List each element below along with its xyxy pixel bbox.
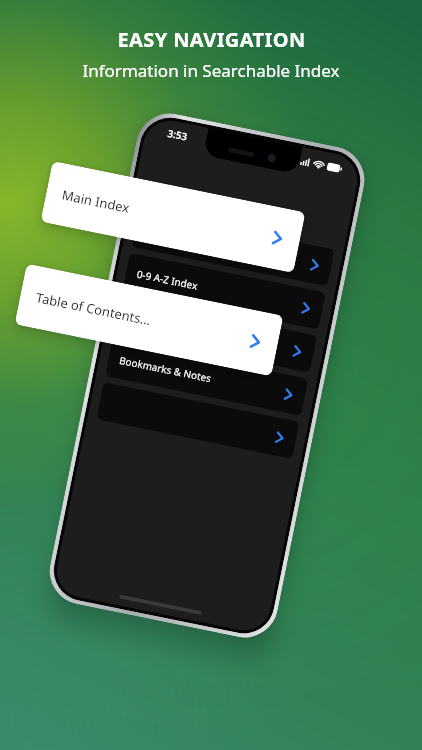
staticText: EASY NAVIGATION — [117, 26, 306, 53]
staticText: Main Index — [60, 186, 132, 217]
button[interactable]: Back — [139, 172, 175, 207]
staticText: Information in Searchable Index — [82, 59, 340, 82]
staticText: Choose Index Type — [192, 190, 291, 224]
staticText: 3:53 — [166, 126, 189, 144]
button[interactable] — [96, 382, 300, 459]
button[interactable]: Table of Contents... — [14, 263, 283, 376]
staticText: Table of Contents... — [34, 288, 153, 329]
button[interactable] — [114, 296, 317, 373]
button[interactable]: 0-9 A-Z Index — [122, 253, 326, 330]
button[interactable]: Bookmarks & Notes — [105, 339, 308, 416]
button[interactable]: Main Index — [40, 161, 306, 273]
button[interactable]: Main Index — [131, 209, 335, 287]
staticText: Main Index — [144, 223, 199, 248]
staticText: 0-9 A-Z Index — [136, 267, 199, 293]
staticText: Bookmarks & Notes — [118, 353, 213, 385]
